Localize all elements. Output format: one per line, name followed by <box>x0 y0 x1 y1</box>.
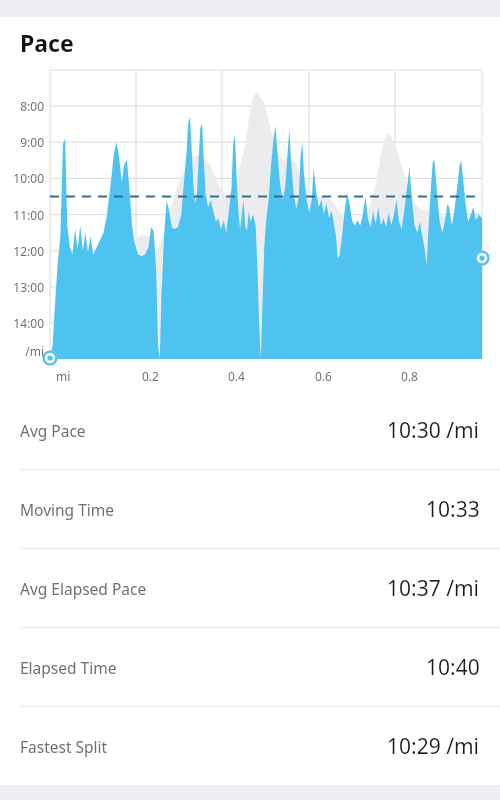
staticText: 9:00 <box>0 134 44 150</box>
staticText: Moving Time <box>20 499 114 520</box>
staticText: 10:00 <box>0 170 44 186</box>
staticText: /mi <box>0 343 44 359</box>
button[interactable]: Avg Elapsed Pace <box>0 549 500 627</box>
button[interactable]: Avg Pace <box>0 391 500 469</box>
staticText: 14:00 <box>0 315 44 331</box>
staticText: Avg Elapsed Pace <box>20 578 147 599</box>
staticText: 0.4 <box>228 368 268 384</box>
staticText: 13:00 <box>0 279 44 295</box>
staticText: Pace <box>20 27 74 58</box>
button[interactable]: Fastest Split <box>0 707 500 785</box>
button[interactable]: Elapsed Time <box>0 628 500 706</box>
staticText: 11:00 <box>0 207 44 223</box>
staticText: 10:37 /mi <box>387 574 480 603</box>
staticText: 10:30 /mi <box>387 416 480 445</box>
staticText: mi <box>56 368 96 384</box>
staticText: Fastest Split <box>20 736 108 757</box>
staticText: 0.8 <box>401 368 441 384</box>
staticText: 10:33 <box>426 495 480 524</box>
staticText: 10:40 <box>426 653 480 682</box>
staticText: 12:00 <box>0 243 44 259</box>
staticText: Avg Pace <box>20 420 86 441</box>
staticText: 0.2 <box>142 368 182 384</box>
staticText: Elapsed Time <box>20 657 117 678</box>
button[interactable]: Moving Time <box>0 470 500 548</box>
staticText: 0.6 <box>315 368 355 384</box>
staticText: 10:29 /mi <box>387 732 480 761</box>
staticText: 8:00 <box>0 98 44 114</box>
